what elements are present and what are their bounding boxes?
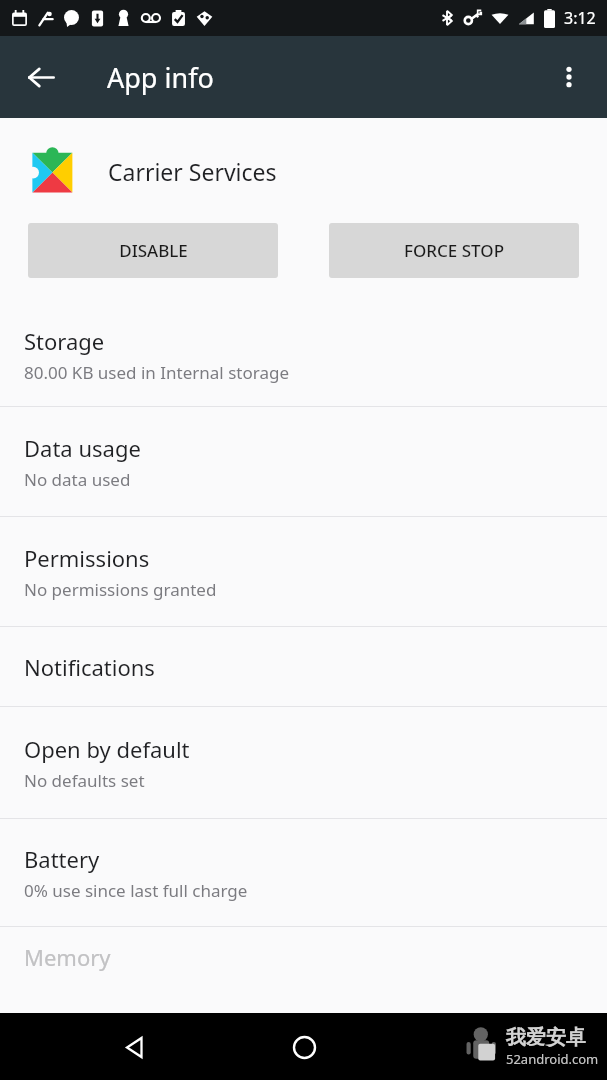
staticText: 我爱安卓 [506,1025,586,1050]
button[interactable]: Open by default [0,707,607,818]
staticText: Battery [24,844,100,874]
staticText: Memory [24,942,111,972]
button[interactable]: Memory [0,927,607,987]
button[interactable]: Home [279,1022,329,1072]
staticText: App info [107,59,214,96]
button[interactable]: DISABLE [28,223,278,278]
button[interactable]: More options [542,50,596,104]
staticText: 0% use since last full charge [24,879,248,902]
staticText: No data used [24,468,131,491]
button[interactable]: FORCE STOP [329,223,579,278]
button[interactable]: Notifications [0,627,607,706]
staticText: FORCE STOP [404,239,504,262]
button[interactable]: Data usage [0,407,607,516]
button[interactable]: Back [110,1022,160,1072]
button[interactable]: Storage [0,303,607,406]
staticText: Open by default [24,734,190,764]
staticText: Carrier Services [108,156,277,187]
staticText: No permissions granted [24,578,217,601]
staticText: 80.00 KB used in Internal storage [24,361,289,384]
staticText: Permissions [24,543,150,573]
staticText: Storage [24,326,105,356]
staticText: 52android.com [506,1050,599,1068]
staticText: No defaults set [24,769,145,792]
staticText: 3:12 [564,7,596,29]
button[interactable]: Permissions [0,517,607,626]
button[interactable]: Battery [0,819,607,926]
button[interactable]: Navigate up [13,49,69,105]
staticText: Notifications [24,652,155,682]
staticText: DISABLE [119,239,188,262]
staticText: Data usage [24,433,141,463]
